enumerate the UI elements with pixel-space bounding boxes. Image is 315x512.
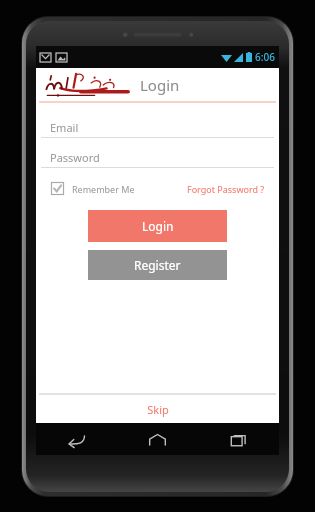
button[interactable]: Home bbox=[117, 423, 198, 455]
staticText: Register bbox=[134, 257, 181, 273]
staticText: Email bbox=[50, 120, 79, 135]
button[interactable]: Login bbox=[88, 210, 227, 242]
staticText: Remember Me bbox=[72, 183, 135, 195]
staticText: 6:06 bbox=[255, 50, 275, 64]
staticText: Login bbox=[142, 218, 174, 234]
button[interactable]: Skip bbox=[36, 395, 279, 423]
staticText: Skip bbox=[147, 402, 169, 417]
button[interactable]: Remember Me bbox=[51, 182, 135, 195]
staticText: Password bbox=[50, 150, 100, 165]
button[interactable]: Register bbox=[88, 250, 227, 280]
button[interactable]: Recent apps bbox=[198, 423, 279, 455]
button[interactable]: Forgot Password ? bbox=[187, 183, 265, 195]
button[interactable]: Back bbox=[36, 423, 117, 455]
staticText: Login bbox=[140, 75, 180, 95]
staticText: Forgot Password ? bbox=[187, 183, 265, 195]
